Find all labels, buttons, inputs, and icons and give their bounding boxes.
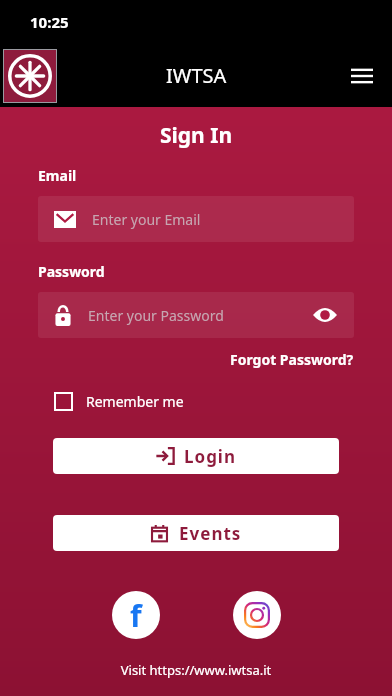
staticText: IWTSA (166, 62, 227, 89)
button[interactable]: IWTSA logo (4, 50, 56, 102)
button[interactable]: Menu (342, 56, 382, 96)
staticText: Email (38, 166, 77, 185)
staticText: Enter your Email (92, 210, 201, 229)
button[interactable]: Remember me (38, 390, 192, 413)
staticText: Password (38, 262, 105, 281)
staticText: f (130, 595, 142, 636)
button[interactable]: Events (53, 515, 339, 551)
staticText: Sign In (38, 121, 354, 150)
button[interactable]: Forgot Password? (230, 350, 354, 369)
staticText: Enter your Password (88, 306, 312, 325)
staticText: Remember me (86, 392, 184, 411)
staticText: Events (179, 522, 242, 545)
button[interactable]: Facebook (112, 591, 160, 639)
button[interactable]: Login (53, 438, 339, 474)
staticText: 10:25 (30, 12, 69, 32)
staticText: Visit https://www.iwtsa.it (38, 661, 354, 679)
button[interactable]: Instagram (233, 591, 281, 639)
button[interactable]: Show password (312, 302, 338, 328)
button[interactable]: Enter your Password (38, 292, 354, 338)
staticText: Login (184, 445, 237, 468)
button[interactable]: Enter your Email (38, 196, 354, 242)
